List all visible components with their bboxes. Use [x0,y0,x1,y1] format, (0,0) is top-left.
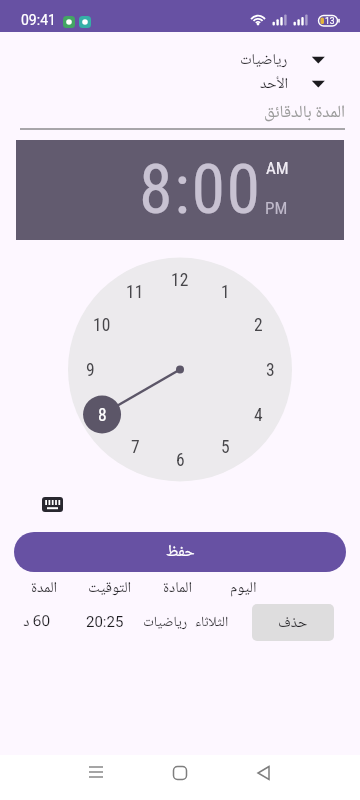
staticText: التوقيت [88,578,132,598]
staticText: المدة [31,578,58,598]
staticText: 6 [176,450,185,471]
button[interactable]: الأحد [221,70,328,98]
staticText: 3 [266,360,275,381]
button[interactable]: رياضيات [221,46,328,74]
staticText: رياضيات [143,613,188,632]
staticText: 1 [221,282,230,303]
button[interactable] [159,752,201,794]
staticText: حفظ [166,541,195,563]
button[interactable]: حفظ [14,532,346,572]
button[interactable]: حذف [252,604,334,641]
staticText: 2 [254,315,263,336]
staticText: 8:00 [139,150,262,230]
button[interactable] [36,492,68,518]
button[interactable]: AM [255,156,299,180]
staticText: 10 [93,315,111,336]
staticText: 8 [98,405,107,426]
staticText: الأحد [260,74,288,94]
staticText: المدة بالدقائق [264,101,346,124]
staticText: 9 [86,360,95,381]
staticText: 60 د [23,612,50,632]
button[interactable]: PM [254,196,298,220]
staticText: PM [265,198,288,218]
staticText: 11 [126,282,144,303]
staticText: AM [266,158,289,178]
staticText: الثلاثاء [195,613,229,632]
staticText: 09:41 [21,12,56,28]
staticText: 5 [221,437,230,458]
staticText: 13 [325,16,335,26]
staticText: اليوم [230,578,257,598]
staticText: 20:25 [86,613,124,631]
staticText: المادة [163,578,193,598]
button[interactable] [242,752,284,794]
staticText: حذف [278,613,308,633]
staticText: 7 [131,437,140,458]
staticText: 4 [254,405,263,426]
staticText: رياضيات [240,50,288,70]
staticText: 12 [171,270,189,291]
button[interactable] [75,752,117,794]
